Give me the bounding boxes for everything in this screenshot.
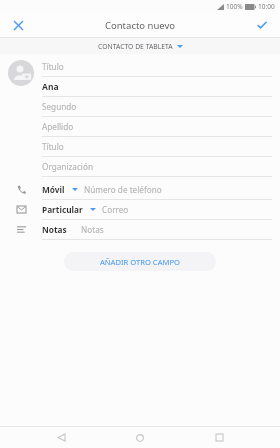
button[interactable]: Guardar bbox=[252, 15, 272, 35]
staticText: Móvil bbox=[42, 184, 65, 195]
button[interactable]: Móvil bbox=[0, 180, 280, 200]
staticText: Organización bbox=[42, 161, 93, 172]
button[interactable]: Inicio bbox=[122, 427, 158, 448]
staticText: CONTACTO DE TABLETA bbox=[98, 42, 173, 51]
staticText: Particular bbox=[42, 204, 83, 215]
button[interactable]: Segundo bbox=[42, 97, 272, 117]
button[interactable]: Añadir foto bbox=[8, 60, 34, 86]
staticText: Correo bbox=[102, 204, 129, 215]
button[interactable]: Organización bbox=[42, 157, 272, 177]
staticText: Notas bbox=[81, 224, 104, 235]
button[interactable]: Particular bbox=[0, 200, 280, 220]
button[interactable]: CONTACTO DE TABLETA bbox=[0, 38, 280, 54]
staticText: 100% bbox=[226, 2, 243, 11]
staticText: Segundo bbox=[42, 101, 77, 112]
staticText: Número de teléfono bbox=[84, 184, 162, 195]
button[interactable]: Recientes bbox=[201, 427, 237, 448]
staticText: 10:00 bbox=[258, 2, 275, 11]
button[interactable]: Cerrar bbox=[8, 15, 28, 35]
button[interactable]: Apellido bbox=[42, 117, 272, 137]
staticText: Notas bbox=[42, 224, 67, 235]
staticText: Contacto nuevo bbox=[105, 19, 176, 32]
staticText: AÑADIR OTRO CAMPO bbox=[100, 257, 180, 267]
staticText: Título bbox=[42, 141, 64, 152]
button[interactable]: Notas bbox=[0, 220, 280, 240]
button[interactable]: Ana bbox=[42, 77, 272, 97]
button[interactable]: AÑADIR OTRO CAMPO bbox=[64, 252, 216, 271]
button[interactable]: Título bbox=[42, 137, 272, 157]
button[interactable]: Título bbox=[42, 57, 272, 77]
staticText: Apellido bbox=[42, 121, 74, 132]
staticText: Título bbox=[42, 61, 64, 72]
button[interactable]: Atrás bbox=[43, 427, 79, 448]
staticText: Ana bbox=[42, 81, 59, 93]
